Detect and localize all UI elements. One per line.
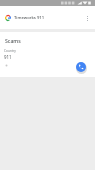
button[interactable]: Call xyxy=(76,62,86,72)
staticText: Scams xyxy=(5,37,21,44)
staticText: 911 xyxy=(4,54,12,60)
staticText: Timeworks 911 xyxy=(14,15,45,21)
button[interactable]: More options xyxy=(81,12,93,24)
staticText: Country xyxy=(4,49,16,53)
